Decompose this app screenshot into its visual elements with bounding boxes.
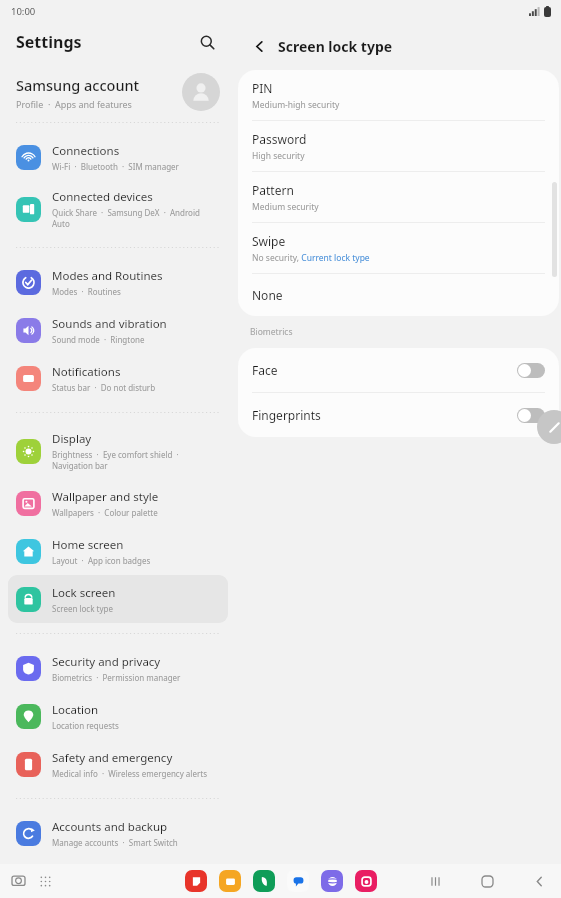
staticText: Connections — [52, 143, 120, 159]
staticText: Screen lock type — [52, 603, 113, 614]
staticText: Location requests — [52, 720, 119, 731]
button[interactable]: Back — [244, 31, 274, 61]
staticText: Wallpapers · Colour palette — [52, 507, 158, 518]
staticText: Pattern — [252, 182, 294, 198]
button[interactable]: Face — [238, 348, 559, 392]
staticText: Location — [52, 702, 99, 718]
staticText: Medium-high security — [252, 99, 340, 111]
button[interactable]: Lock screen — [8, 575, 228, 623]
staticText: Medical info · Wireless emergency alerts — [52, 768, 207, 779]
staticText: PIN — [252, 80, 273, 96]
button[interactable]: cam — [355, 870, 377, 892]
staticText: Sounds and vibration — [52, 316, 167, 332]
staticText: Profile · Apps and features — [16, 98, 132, 110]
staticText: Biometrics · Permission manager — [52, 672, 181, 683]
staticText: High security — [252, 150, 305, 162]
button[interactable]: msg — [287, 870, 309, 892]
button[interactable]: Samsung account — [0, 62, 236, 122]
button[interactable]: Pattern — [238, 172, 559, 222]
staticText: Safety and emergency — [52, 750, 173, 766]
staticText: Layout · App icon badges — [52, 555, 151, 566]
staticText: Notifications — [52, 364, 121, 380]
staticText: Settings — [16, 31, 82, 53]
staticText: Manage accounts · Smart Switch — [52, 837, 178, 848]
button[interactable]: Connections — [8, 133, 228, 181]
staticText: Brightness · Eye comfort shield · Naviga… — [52, 449, 179, 471]
button[interactable]: Sounds and vibration — [8, 306, 228, 354]
button[interactable]: phone — [253, 870, 275, 892]
staticText: Security and privacy — [52, 654, 161, 670]
button[interactable]: Home screen — [8, 527, 228, 575]
button[interactable]: Recent apps — [7, 870, 29, 892]
button[interactable]: Accounts and backup — [8, 809, 228, 857]
staticText: Status bar · Do not disturb — [52, 382, 156, 393]
button[interactable]: Edit — [537, 410, 561, 444]
staticText: Modes · Routines — [52, 286, 121, 297]
button[interactable]: Connected devices — [8, 181, 228, 237]
staticText: Samsung account — [16, 75, 140, 95]
button[interactable]: Wallpaper and style — [8, 479, 228, 527]
button[interactable]: Notifications — [8, 354, 228, 402]
button[interactable]: Apps — [34, 870, 56, 892]
button[interactable]: folder — [219, 870, 241, 892]
staticText: Screen lock type — [278, 37, 393, 56]
button[interactable]: Home — [475, 869, 499, 893]
button[interactable]: Location — [8, 692, 228, 740]
staticText: Face — [252, 362, 517, 378]
staticText: None — [252, 287, 283, 303]
staticText: No security, Current lock type — [252, 252, 370, 264]
staticText: Connected devices — [52, 189, 153, 205]
staticText: Display — [52, 431, 92, 447]
button[interactable]: PIN — [238, 70, 559, 120]
staticText: Sound mode · Ringtone — [52, 334, 145, 345]
button[interactable]: Password — [238, 121, 559, 171]
button[interactable]: Search — [192, 27, 222, 57]
button[interactable]: note — [185, 870, 207, 892]
staticText: Quick Share · Samsung DeX · Android Auto — [52, 207, 200, 229]
button[interactable]: Fingerprints — [238, 393, 559, 437]
button[interactable]: Modes and Routines — [8, 258, 228, 306]
button[interactable]: None — [238, 274, 559, 316]
staticText: Modes and Routines — [52, 268, 163, 284]
button[interactable]: Security and privacy — [8, 644, 228, 692]
staticText: Wi-Fi · Bluetooth · SIM manager — [52, 161, 179, 172]
button[interactable]: Safety and emergency — [8, 740, 228, 788]
staticText: 10:00 — [11, 5, 36, 18]
staticText: Swipe — [252, 233, 286, 249]
staticText: Lock screen — [52, 585, 116, 601]
button[interactable]: Display — [8, 423, 228, 479]
staticText: Accounts and backup — [52, 819, 168, 835]
staticText: Home screen — [52, 537, 124, 553]
button[interactable]: Recents — [423, 869, 447, 893]
button[interactable]: Back — [527, 869, 551, 893]
staticText: Biometrics — [250, 326, 293, 338]
staticText: Fingerprints — [252, 407, 517, 423]
button[interactable]: net — [321, 870, 343, 892]
button[interactable]: Swipe — [238, 223, 559, 273]
staticText: Password — [252, 131, 307, 147]
staticText: Medium security — [252, 201, 319, 213]
staticText: Wallpaper and style — [52, 489, 159, 505]
